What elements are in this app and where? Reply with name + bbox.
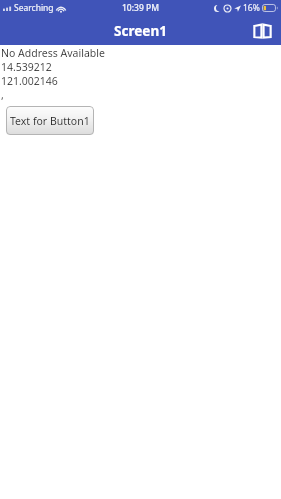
- staticText: 10:39 PM: [122, 2, 159, 14]
- button[interactable]: Text for Button1: [6, 106, 94, 135]
- staticText: 14.539212: [1, 60, 52, 74]
- staticText: 16%: [243, 2, 260, 14]
- staticText: Text for Button1: [10, 114, 90, 128]
- staticText: Screen1: [114, 22, 167, 40]
- staticText: 121.002146: [1, 74, 58, 88]
- button[interactable]: Open book: [249, 18, 275, 44]
- staticText: Searching: [14, 2, 54, 14]
- staticText: No Address Available: [1, 46, 105, 60]
- staticText: ,: [1, 88, 4, 102]
